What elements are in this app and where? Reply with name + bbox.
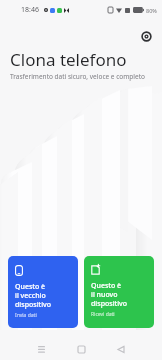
staticText: 18:46 [21,5,39,15]
staticText: Questo è il vecchio dispositivo [15,282,52,309]
staticText: Trasferimento dati sicuro, veloce e comp… [10,72,145,81]
button[interactable]: Impostazioni [137,27,155,45]
button[interactable]: Questo è il nuovo dispositivo [84,256,154,328]
staticText: Clona telefono [10,48,127,71]
button[interactable]: Questo è il vecchio dispositivo [8,256,78,328]
button[interactable]: Recenti [21,338,61,360]
staticText: Questo è il nuovo dispositivo [91,281,128,308]
staticText: 80% [146,7,157,14]
staticText: Invia dati [15,312,37,319]
button[interactable]: Indietro [101,338,141,360]
button[interactable]: Home [61,338,101,360]
staticText: Ricevi dati [91,311,115,318]
